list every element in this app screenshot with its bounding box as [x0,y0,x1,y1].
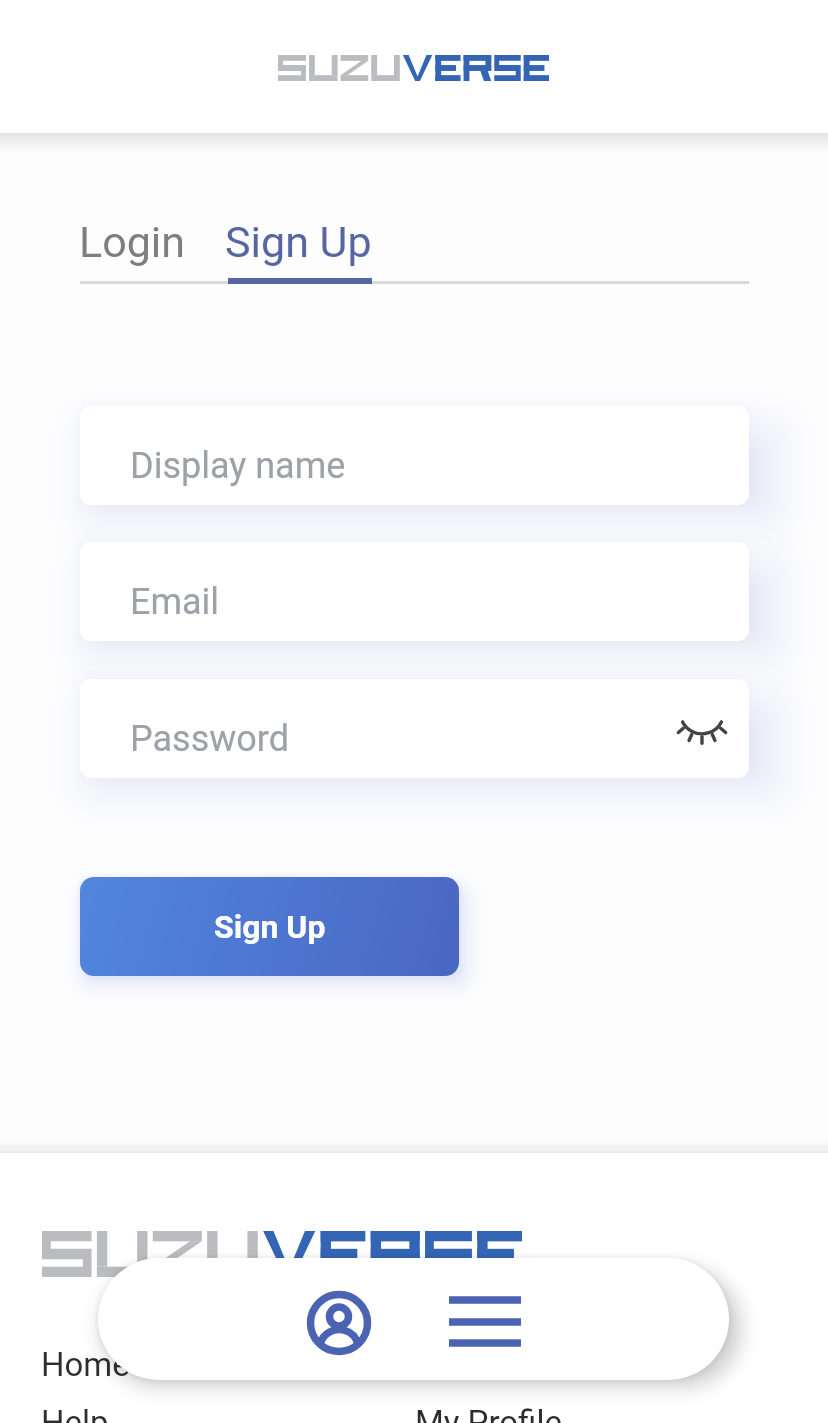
staticText: Email [130,581,220,623]
button[interactable]: Help [41,1403,109,1423]
button[interactable]: Profile [299,1283,379,1363]
button[interactable]: My Profile [415,1403,562,1423]
button[interactable]: Menu [445,1283,525,1363]
button[interactable]: Sign Up [80,877,459,976]
button[interactable]: Login [79,217,186,267]
staticText: Help [41,1403,109,1423]
staticText: Password [130,718,290,760]
button[interactable]: Home [41,1345,130,1384]
staticText: Home [41,1345,130,1384]
button[interactable]: Show password [673,700,731,758]
staticText: Display name [130,445,346,487]
staticText: My Profile [415,1403,562,1423]
button[interactable]: Sign Up [225,217,372,267]
button[interactable]: Password [80,679,749,778]
button[interactable]: Display name [80,406,749,505]
button[interactable]: Email [80,542,749,641]
staticText: Sign Up [225,217,372,267]
staticText: Sign Up [214,908,326,946]
staticText: Login [79,217,186,267]
